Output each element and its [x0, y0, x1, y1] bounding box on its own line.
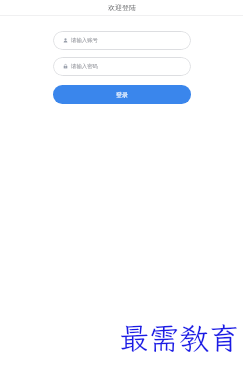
staticText: 欢迎登陆 — [108, 3, 136, 12]
button[interactable]: 登录 — [53, 85, 191, 104]
staticText: 登录 — [116, 91, 128, 99]
staticText: 最需教育 — [119, 318, 239, 358]
button[interactable]: 请输入密码 — [53, 57, 191, 76]
staticText: 请输入密码 — [71, 63, 98, 70]
button[interactable]: 请输入账号 — [53, 31, 191, 50]
staticText: 请输入账号 — [71, 37, 98, 44]
